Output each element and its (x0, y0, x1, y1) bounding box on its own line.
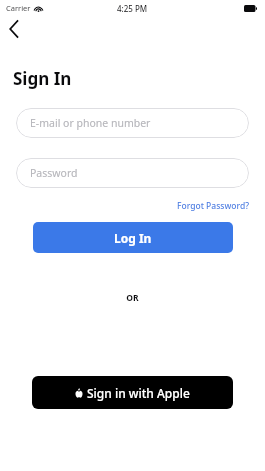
staticText: Password (30, 166, 78, 180)
button[interactable]: Forgot Password? (175, 199, 251, 213)
button[interactable]: Password (16, 158, 249, 188)
staticText: E-mail or phone number (30, 116, 151, 130)
button[interactable]: Sign in with Apple (32, 376, 233, 409)
button[interactable]: Log In (33, 222, 233, 253)
button[interactable]: E-mail or phone number (16, 108, 249, 138)
staticText: OR (0, 292, 265, 304)
staticText: Sign In (13, 67, 72, 90)
staticText: Log In (114, 230, 152, 246)
staticText: Sign in with Apple (87, 385, 190, 401)
staticText: 4:25 PM (117, 3, 148, 14)
staticText: Carrier (6, 3, 31, 13)
staticText: Forgot Password? (177, 200, 249, 212)
button[interactable]: Back (2, 17, 26, 41)
